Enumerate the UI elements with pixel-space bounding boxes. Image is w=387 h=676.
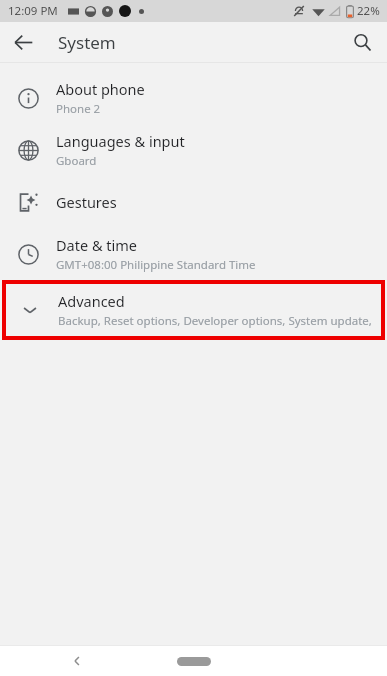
staticText: Languages & input	[56, 131, 185, 151]
staticText: About phone	[56, 79, 145, 99]
button[interactable]: Home	[164, 648, 224, 674]
button[interactable]: Languages & input	[0, 124, 387, 176]
staticText: Advanced	[58, 291, 125, 311]
button[interactable]: Back	[0, 22, 46, 62]
button[interactable]: Advanced	[2, 280, 385, 340]
staticText: Phone 2	[56, 101, 101, 117]
staticText: Date & time	[56, 235, 137, 255]
button[interactable]: Back	[62, 646, 92, 676]
button[interactable]: Gestures	[0, 176, 387, 228]
button[interactable]: About phone	[0, 72, 387, 124]
staticText: Gboard	[56, 153, 97, 169]
button[interactable]: Search	[339, 22, 385, 62]
button[interactable]: Date & time	[0, 228, 387, 280]
staticText: System	[58, 31, 116, 54]
staticText: 22%	[357, 3, 380, 19]
staticText: Backup, Reset options, Developer options…	[58, 313, 375, 329]
staticText: Gestures	[56, 192, 117, 212]
staticText: GMT+08:00 Philippine Standard Time	[56, 257, 256, 273]
staticText: 12:09 PM	[8, 3, 58, 19]
